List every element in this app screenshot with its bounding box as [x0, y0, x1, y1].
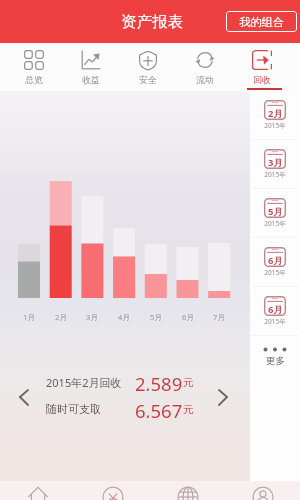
- staticText: 2,589: [135, 371, 183, 391]
- staticText: 3月: [81, 312, 103, 322]
- staticText: 6,567: [135, 398, 183, 418]
- staticText: 2015年: [264, 219, 286, 228]
- staticText: 2015年: [264, 121, 286, 130]
- staticText: 1月: [18, 312, 40, 322]
- button[interactable]: 安全: [119, 43, 176, 91]
- staticText: 安全: [139, 75, 157, 86]
- button[interactable]: 收益: [62, 43, 119, 91]
- button[interactable]: 5月: [250, 189, 300, 237]
- button[interactable]: 上一月: [12, 383, 40, 411]
- staticText: 更多: [266, 355, 285, 367]
- staticText: 回收: [253, 75, 271, 86]
- staticText: 元: [183, 403, 194, 416]
- staticText: 2015年2月回收: [46, 375, 122, 390]
- staticText: 收益: [82, 75, 100, 86]
- button[interactable]: 6月: [250, 238, 300, 286]
- button[interactable]: 6月: [250, 287, 300, 335]
- staticText: 我的组合: [239, 15, 284, 29]
- button[interactable]: 发现: [150, 481, 225, 500]
- staticText: 总览: [25, 75, 43, 86]
- button[interactable]: 首页: [0, 481, 75, 500]
- button[interactable]: 回收: [233, 43, 290, 91]
- button[interactable]: 流动: [176, 43, 233, 91]
- staticText: 4月: [113, 312, 135, 322]
- staticText: 3月: [268, 156, 283, 169]
- staticText: 2月: [50, 312, 72, 322]
- button[interactable]: 我的组合: [226, 11, 297, 32]
- button[interactable]: 我的: [225, 481, 300, 500]
- staticText: 资产报表: [121, 12, 183, 32]
- staticText: 2月: [268, 107, 283, 120]
- button[interactable]: 下一月: [211, 383, 239, 411]
- button[interactable]: 理财: [75, 481, 150, 500]
- button[interactable]: 更多: [250, 336, 300, 381]
- staticText: 2015年: [264, 170, 286, 179]
- button[interactable]: 总览: [6, 43, 62, 91]
- staticText: 2015年: [264, 268, 286, 277]
- button[interactable]: 2月: [250, 91, 300, 139]
- staticText: 6月: [177, 312, 199, 322]
- staticText: 6月: [268, 303, 283, 316]
- button[interactable]: 3月: [250, 140, 300, 188]
- staticText: 5月: [268, 205, 283, 218]
- staticText: 6月: [268, 254, 283, 267]
- staticText: 元: [183, 376, 194, 389]
- staticText: 5月: [145, 312, 167, 322]
- staticText: 随时可支取: [46, 402, 101, 416]
- staticText: 流动: [196, 75, 214, 86]
- staticText: 7月: [208, 312, 230, 322]
- staticText: 2015年: [264, 317, 286, 326]
